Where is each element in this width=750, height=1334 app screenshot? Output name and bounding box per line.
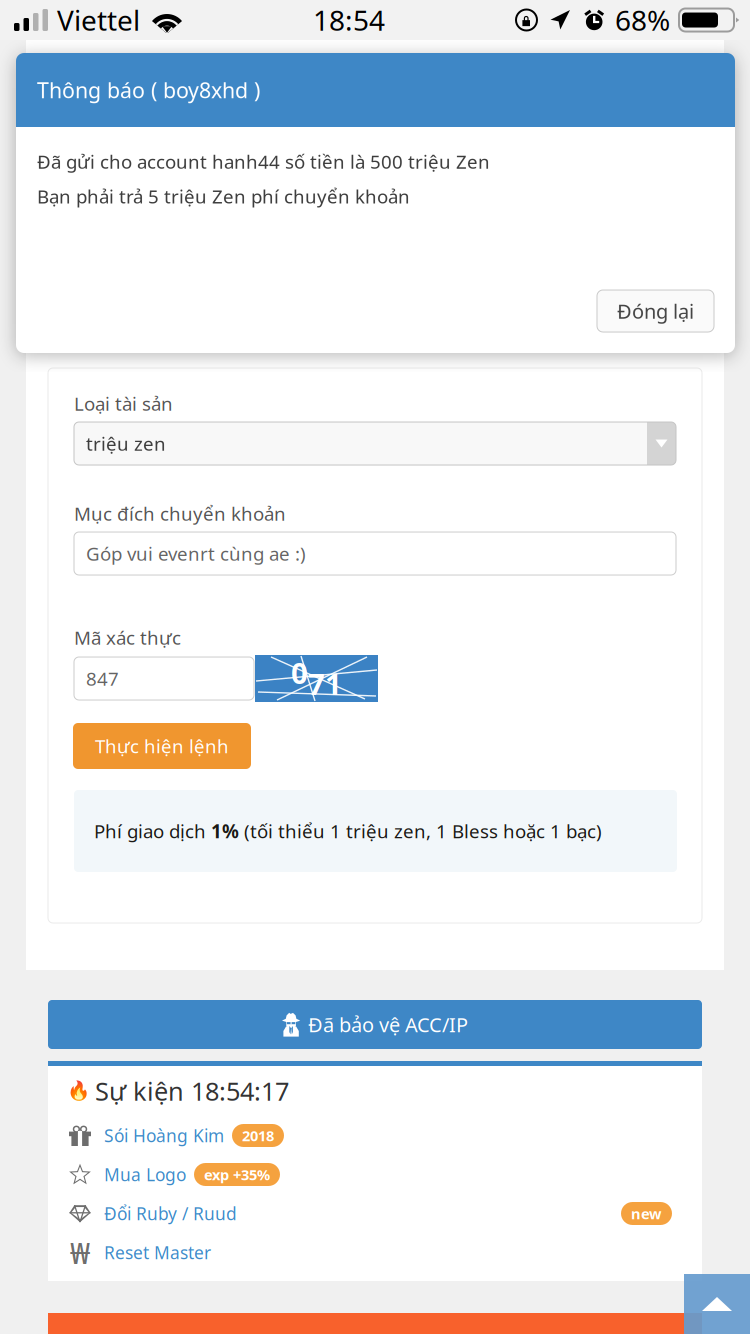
staticText: 847 xyxy=(86,666,119,691)
staticText: Mua Logo xyxy=(104,1163,186,1186)
staticText: ₩ xyxy=(70,1233,90,1272)
staticText: Đã bảo vệ ACC/IP xyxy=(308,1011,468,1038)
staticText: Đã gửi cho account hanh44 số tiền là 500… xyxy=(37,149,490,174)
staticText: 68% xyxy=(615,1,670,39)
staticText: 18:54 xyxy=(313,1,385,39)
button[interactable]: ₩ xyxy=(48,1233,702,1272)
button[interactable]: Đã bảo vệ ACC/IP xyxy=(48,1000,702,1049)
staticText: 2018 xyxy=(242,1126,274,1145)
staticText: Sự kiện 18:54:17 xyxy=(95,1074,289,1108)
staticText: 🔥 xyxy=(66,1080,89,1102)
button[interactable]: Thực hiện lệnh xyxy=(73,723,251,769)
staticText: Thông báo ( boy8xhd ) xyxy=(37,76,260,104)
staticText: 0 xyxy=(291,653,308,692)
staticText: Thực hiện lệnh xyxy=(95,734,229,758)
staticText: Đổi Ruby / Ruud xyxy=(104,1202,237,1225)
staticText: Đóng lại xyxy=(617,298,694,324)
staticText: Mã xác thực xyxy=(74,625,181,650)
button[interactable]: Đóng lại xyxy=(597,290,714,332)
staticText: Phí giao dịch 1% (tối thiểu 1 triệu zen,… xyxy=(94,819,602,843)
staticText: 71 xyxy=(308,664,342,703)
button[interactable]: Mua Logo xyxy=(48,1155,702,1194)
button[interactable]: Sói Hoàng Kim xyxy=(48,1116,702,1155)
button[interactable]: triệu zen xyxy=(73,421,677,466)
button[interactable]: Đổi Ruby / Ruud xyxy=(48,1194,702,1233)
staticText: exp +35% xyxy=(204,1165,270,1184)
staticText: Reset Master xyxy=(104,1241,211,1264)
staticText: Viettel xyxy=(57,1,140,39)
staticText: Góp vui evenrt cùng ae :) xyxy=(86,541,306,566)
staticText: Bạn phải trả 5 triệu Zen phí chuyển khoả… xyxy=(37,184,410,209)
button[interactable]: Scroll to top xyxy=(684,1274,750,1334)
staticText: Loại tài sản xyxy=(74,391,173,416)
staticText: triệu zen xyxy=(86,431,166,456)
staticText: Sói Hoàng Kim xyxy=(104,1124,224,1147)
staticText: new xyxy=(631,1204,662,1223)
staticText: Mục đích chuyển khoản xyxy=(74,501,286,526)
